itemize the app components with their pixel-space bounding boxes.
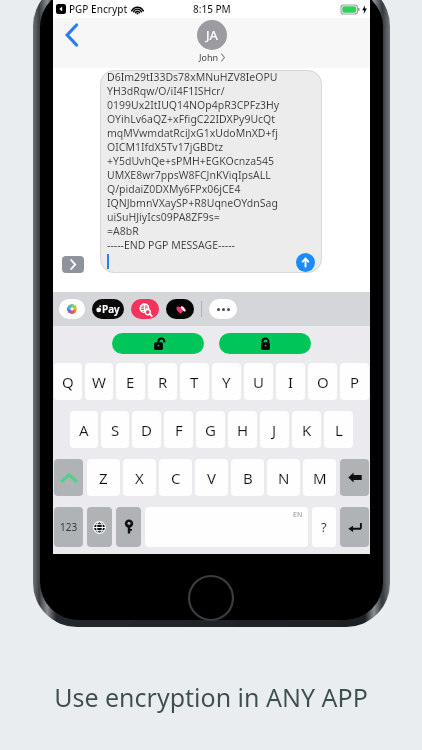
staticText: Y xyxy=(222,372,231,392)
button[interactable]: B xyxy=(231,459,264,496)
button[interactable]: F xyxy=(164,411,193,448)
staticText: T xyxy=(190,372,199,392)
button[interactable]: P xyxy=(340,363,369,400)
button[interactable]: JA xyxy=(197,20,227,63)
button[interactable]: A xyxy=(70,411,98,448)
button[interactable]: C xyxy=(159,459,192,496)
staticText: D6Im29tI33Ds78xMNuHZV8IeOPU xyxy=(107,70,278,84)
staticText: OYihLv6aQZ+xFfigC22IDXPy9UcQt xyxy=(107,112,276,126)
staticText: P xyxy=(350,372,360,392)
staticText: YH3dRqw/O/iI4F1ISHcr/ xyxy=(107,84,225,98)
button[interactable]: Decrypt xyxy=(112,333,204,354)
button[interactable]: Expand apps xyxy=(62,256,84,273)
staticText: PGP Encrypt xyxy=(69,2,128,16)
button[interactable]: Z xyxy=(87,459,120,496)
staticText: Q/pidaiZ0DXMy6FPx06jCE4 xyxy=(107,182,241,196)
button[interactable]: More apps xyxy=(209,299,237,319)
button[interactable]: H xyxy=(228,411,257,448)
staticText: =A8bR xyxy=(107,224,139,238)
staticText: -----END PGP MESSAGE----- xyxy=(107,238,235,252)
staticText: 123 xyxy=(60,520,78,534)
button[interactable]: R xyxy=(148,363,177,400)
button[interactable]: I xyxy=(276,363,305,400)
staticText: N xyxy=(278,468,290,488)
button[interactable]: W xyxy=(85,363,113,400)
staticText: IQNJbmnVXaySP+R8UqneOYdnSag xyxy=(107,196,278,210)
staticText: I xyxy=(288,372,294,392)
button[interactable]: M xyxy=(303,459,336,496)
button[interactable]: N xyxy=(267,459,300,496)
button[interactable]: D6Im29tI33Ds78xMNuHZV8IeOPU xyxy=(100,70,322,273)
button[interactable]: S xyxy=(101,411,129,448)
button[interactable]: Q xyxy=(54,363,82,400)
button[interactable]: Apple Pay xyxy=(92,299,124,319)
button[interactable]: T xyxy=(180,363,209,400)
staticText: M xyxy=(313,468,327,488)
staticText: O xyxy=(317,372,329,392)
staticText: V xyxy=(207,468,217,488)
staticText: F xyxy=(175,420,183,440)
button[interactable]: Images xyxy=(131,299,159,319)
button[interactable]: Back xyxy=(57,20,87,50)
staticText: JA xyxy=(206,26,218,44)
staticText: B xyxy=(243,468,253,488)
button[interactable]: K xyxy=(292,411,321,448)
staticText: ? xyxy=(321,518,327,536)
button[interactable]: Space xyxy=(145,507,308,547)
staticText: C xyxy=(171,468,181,488)
staticText: A xyxy=(79,420,89,440)
staticText: K xyxy=(302,420,312,440)
button[interactable]: Send xyxy=(296,253,315,272)
button[interactable]: O xyxy=(308,363,337,400)
button[interactable]: V xyxy=(195,459,228,496)
staticText: D xyxy=(141,420,152,440)
button[interactable]: X xyxy=(123,459,156,496)
button[interactable]: Return xyxy=(340,507,369,547)
staticText: G xyxy=(205,420,216,440)
staticText: EN xyxy=(293,510,303,520)
staticText: U xyxy=(253,372,264,392)
staticText: Q xyxy=(62,372,74,392)
button[interactable]: Photos xyxy=(59,299,85,319)
staticText: OICM1IfdX5Tv17jGBDtz xyxy=(107,140,224,154)
button[interactable]: PGP key xyxy=(116,507,141,547)
staticText: S xyxy=(111,420,120,440)
button[interactable]: Y xyxy=(212,363,241,400)
staticText: 8:15 PM xyxy=(193,2,231,16)
staticText: 0199Ux2ItIUQ14NOp4pR3CPFz3Hy xyxy=(107,98,280,112)
button[interactable]: U xyxy=(244,363,273,400)
staticText: mqMVwmdatRciJxG1xUdoMnXD+fj xyxy=(107,126,278,140)
staticText: R xyxy=(158,372,168,392)
button[interactable]: Backspace xyxy=(340,459,369,496)
staticText: UMXE8wr7ppsW8FCJnKViqIpsALL xyxy=(107,168,271,182)
staticText: H xyxy=(237,420,249,440)
button[interactable]: D xyxy=(132,411,161,448)
staticText: J xyxy=(272,420,277,440)
button[interactable]: Shift xyxy=(54,459,83,496)
staticText: +Y5dUvhQe+sPMH+EGKOcnza545 xyxy=(107,154,275,168)
staticText: Use encryption in ANY APP xyxy=(0,680,422,714)
staticText: X xyxy=(135,468,144,488)
button[interactable]: L xyxy=(324,411,353,448)
staticText: L xyxy=(335,420,343,440)
button[interactable]: G xyxy=(196,411,225,448)
button[interactable]: ? xyxy=(312,507,336,547)
staticText: Z xyxy=(99,468,108,488)
staticText: John xyxy=(199,51,219,63)
button[interactable]: Change keyboard xyxy=(87,507,112,547)
button[interactable]: 123 xyxy=(54,507,83,547)
button[interactable]: E xyxy=(116,363,145,400)
staticText: E xyxy=(126,372,135,392)
button[interactable]: Digital Touch xyxy=(166,299,194,319)
button[interactable]: J xyxy=(260,411,289,448)
button[interactable]: Encrypt xyxy=(219,333,311,354)
staticText: Pay xyxy=(102,302,120,316)
staticText: uiSuHJiyIcs09PA8ZF9s= xyxy=(107,210,220,224)
staticText: W xyxy=(92,372,106,392)
